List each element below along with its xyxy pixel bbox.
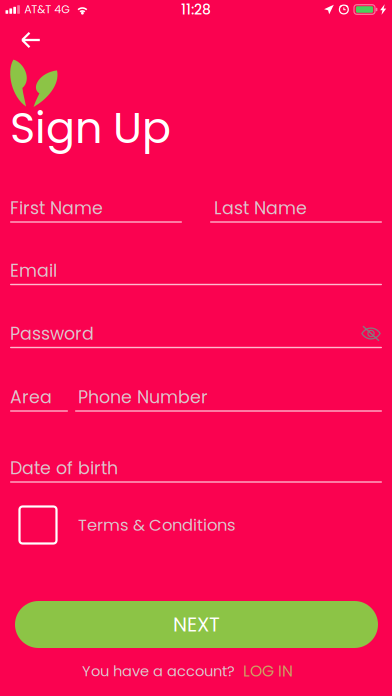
staticText: Sign Up: [10, 98, 171, 158]
staticText: 11:28: [181, 0, 211, 19]
button[interactable]: Terms & Conditions: [19, 503, 269, 547]
button[interactable]: LOG IN: [235, 659, 293, 683]
button[interactable]: Show password: [354, 318, 388, 348]
staticText: Last Name: [214, 196, 307, 220]
staticText: Email: [10, 258, 57, 283]
button[interactable]: Back: [9, 20, 53, 60]
staticText: First Name: [10, 196, 103, 220]
staticText: LOG IN: [243, 660, 293, 682]
staticText: NEXT: [173, 610, 220, 638]
staticText: Password: [10, 321, 94, 346]
staticText: AT&T 4G: [24, 2, 70, 17]
button[interactable]: NEXT: [15, 601, 378, 648]
staticText: You have a account?: [82, 661, 235, 681]
staticText: Phone Number: [78, 385, 208, 409]
staticText: Terms & Conditions: [78, 513, 236, 536]
staticText: Area: [10, 385, 52, 409]
staticText: Date of birth: [10, 456, 118, 480]
